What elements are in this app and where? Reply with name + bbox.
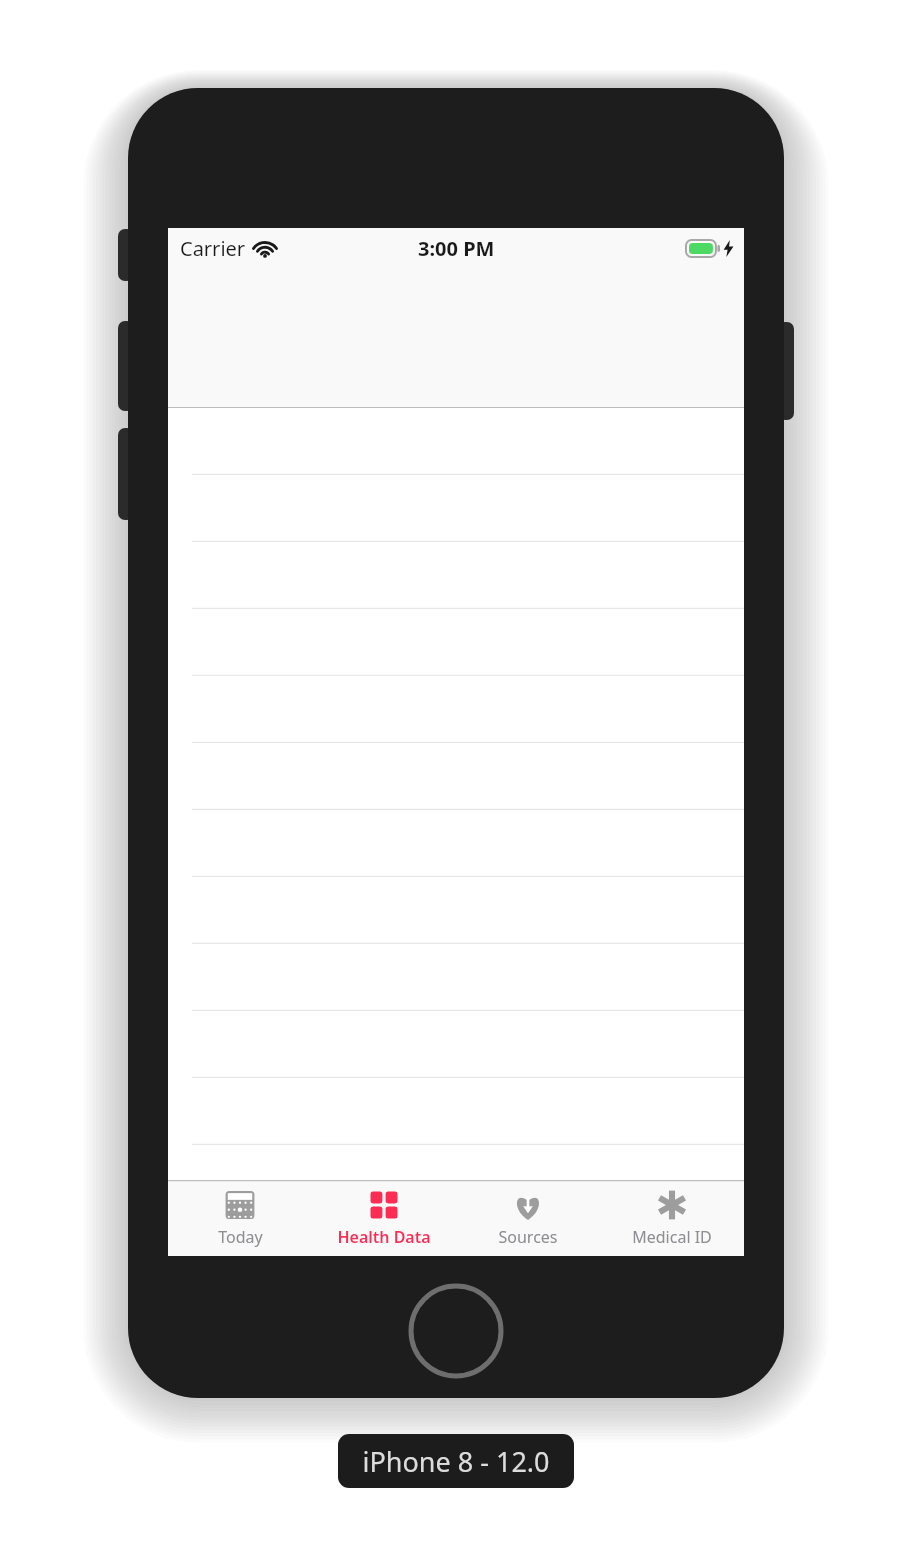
staticText: Today (218, 1226, 263, 1248)
staticText: Medical ID (632, 1226, 712, 1248)
button[interactable]: Today (168, 1180, 312, 1256)
button[interactable]: Medical ID (600, 1180, 744, 1256)
button[interactable]: Health Data (312, 1180, 456, 1256)
staticText: Sources (498, 1226, 558, 1248)
staticText: Carrier (180, 235, 246, 262)
staticText: 3:00 PM (418, 235, 495, 262)
staticText: Health Data (337, 1226, 431, 1248)
button[interactable]: Sources (456, 1180, 600, 1256)
staticText: iPhone 8 - 12.0 (362, 1443, 550, 1480)
